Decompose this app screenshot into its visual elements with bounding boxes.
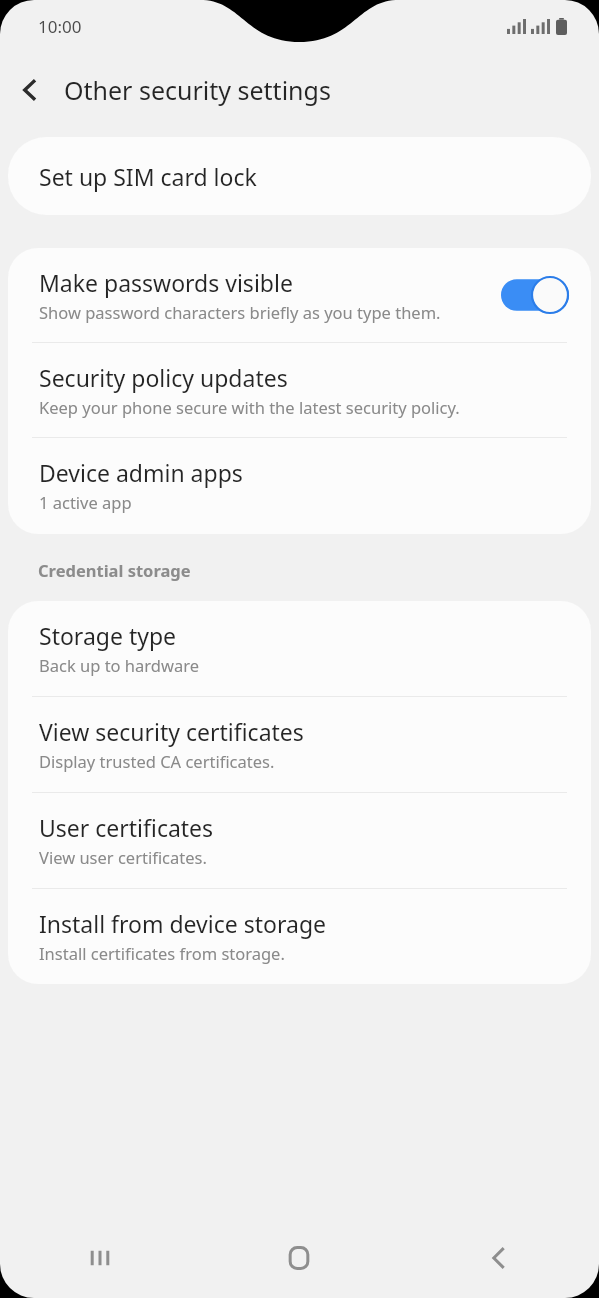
staticText: View security certificates [39,716,304,747]
button[interactable]: Install from device storage [8,889,591,984]
staticText: Credential storage [38,559,191,581]
staticText: Set up SIM card lock [39,161,257,192]
staticText: View user certificates. [39,846,207,868]
button[interactable]: Storage type [8,601,591,696]
staticText: Keep your phone secure with the latest s… [39,396,460,418]
staticText: 10:00 [38,15,82,38]
button[interactable]: Security policy updates [8,343,591,437]
staticText: Install from device storage [39,908,326,939]
button[interactable]: Device admin apps [8,438,591,534]
button[interactable]: Make passwords visible [8,248,591,342]
button[interactable]: Back [0,60,60,120]
staticText: Show password characters briefly as you … [39,301,441,323]
button[interactable]: Set up SIM card lock [8,137,591,215]
button[interactable]: Home [199,1218,399,1298]
staticText: Back up to hardware [39,654,199,676]
staticText: Security policy updates [39,362,288,393]
staticText: Display trusted CA certificates. [39,750,275,772]
button[interactable]: View security certificates [8,697,591,792]
button[interactable]: User certificates [8,793,591,888]
staticText: Device admin apps [39,457,243,488]
button[interactable]: Make passwords visible toggle [501,276,569,314]
staticText: Storage type [39,620,177,651]
staticText: Other security settings [64,73,331,107]
staticText: 1 active app [39,491,132,513]
staticText: Make passwords visible [39,267,293,298]
button[interactable]: Back [399,1218,599,1298]
button[interactable]: Recent apps [0,1218,199,1298]
staticText: Install certificates from storage. [39,942,285,964]
staticText: User certificates [39,812,214,843]
